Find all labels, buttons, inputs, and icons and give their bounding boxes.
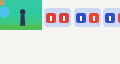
button[interactable]: App group: [44, 8, 71, 27]
button[interactable]: App: [59, 13, 69, 23]
button[interactable]: App: [105, 13, 115, 23]
button[interactable]: App: [89, 13, 99, 23]
button[interactable]: App: [46, 13, 56, 23]
button[interactable]: App: [118, 13, 120, 23]
button[interactable]: App group: [103, 8, 120, 27]
button[interactable]: App: [76, 13, 86, 23]
button[interactable]: App group: [74, 8, 101, 27]
button[interactable]: Photo: [0, 0, 42, 30]
